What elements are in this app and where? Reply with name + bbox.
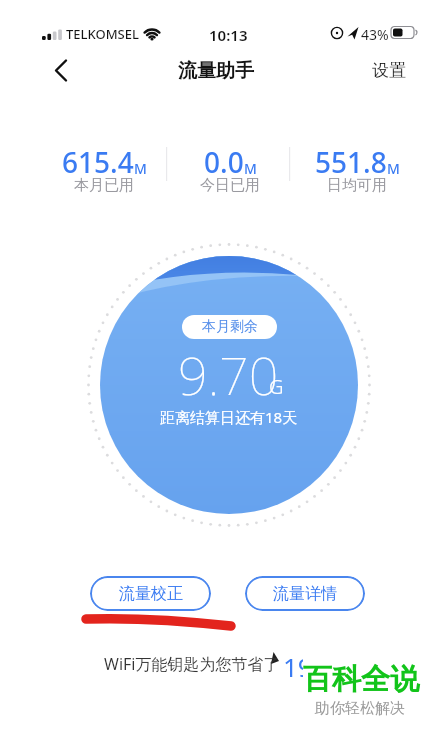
staticText: 流量助手 [178, 59, 254, 83]
staticText: G [269, 373, 284, 400]
staticText: 43% [361, 25, 389, 44]
staticText: 日均可用 [327, 176, 387, 195]
button[interactable] [48, 54, 80, 86]
staticText: 流量详情 [273, 584, 337, 604]
staticText: 今日已用 [200, 176, 260, 195]
staticText: M [134, 159, 147, 178]
staticText: 551.8 [315, 143, 387, 181]
staticText: 615.4 [62, 143, 134, 181]
staticText: M [387, 159, 400, 178]
staticText: 9.70 [178, 339, 279, 410]
staticText: 0.0 [204, 143, 244, 181]
button[interactable]: 本月剩余 [182, 315, 277, 339]
staticText: 19 [283, 649, 313, 684]
staticText: M [244, 159, 257, 178]
staticText: 百科全说 [303, 661, 419, 698]
staticText: 设置 [372, 60, 406, 81]
staticText: TELKOMSEL [66, 25, 139, 43]
staticText: 助你轻松解决 [315, 699, 405, 718]
staticText: 10:13 [209, 25, 248, 45]
button[interactable]: 流量校正 [90, 576, 211, 611]
staticText: 距离结算日还有18天 [160, 407, 298, 427]
staticText: 本月剩余 [202, 318, 258, 336]
staticText: 流量校正 [119, 584, 183, 604]
button[interactable]: 流量详情 [245, 576, 365, 611]
staticText: 本月已用 [74, 176, 134, 195]
staticText: WiFi万能钥匙为您节省了 [104, 653, 280, 675]
button[interactable]: 设置 [349, 60, 429, 81]
